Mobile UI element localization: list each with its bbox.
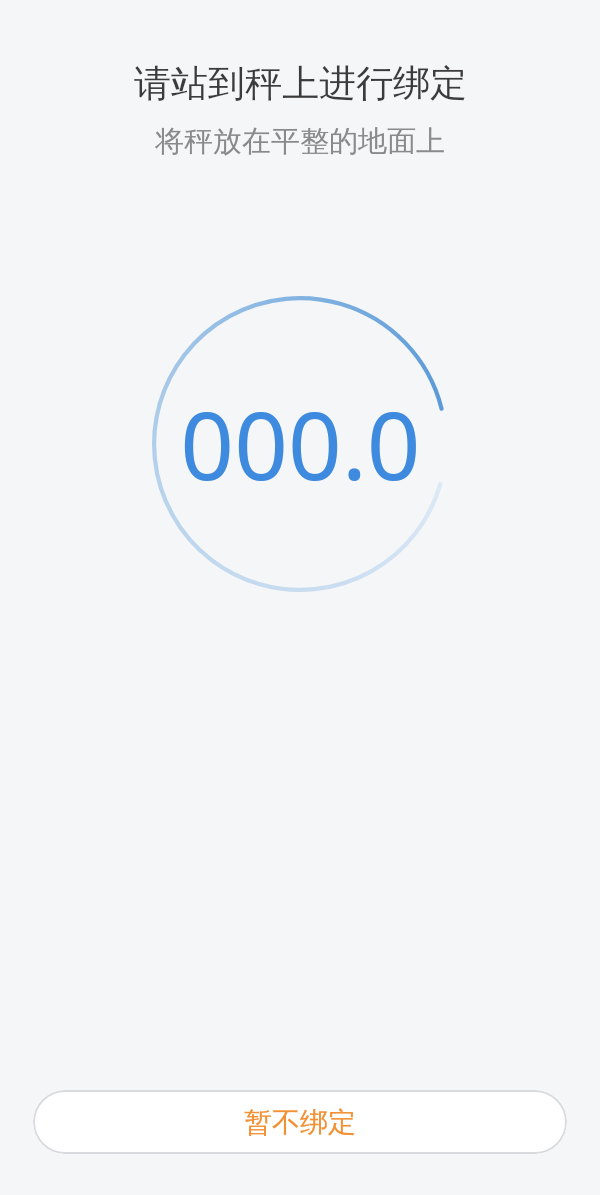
staticText: 请站到秤上进行绑定 — [134, 60, 467, 107]
staticText: 暂不绑定 — [244, 1105, 356, 1140]
staticText: 将秤放在平整的地面上 — [155, 123, 445, 160]
button[interactable]: 暂不绑定 — [33, 1090, 567, 1154]
staticText: 000.0 — [180, 380, 421, 508]
